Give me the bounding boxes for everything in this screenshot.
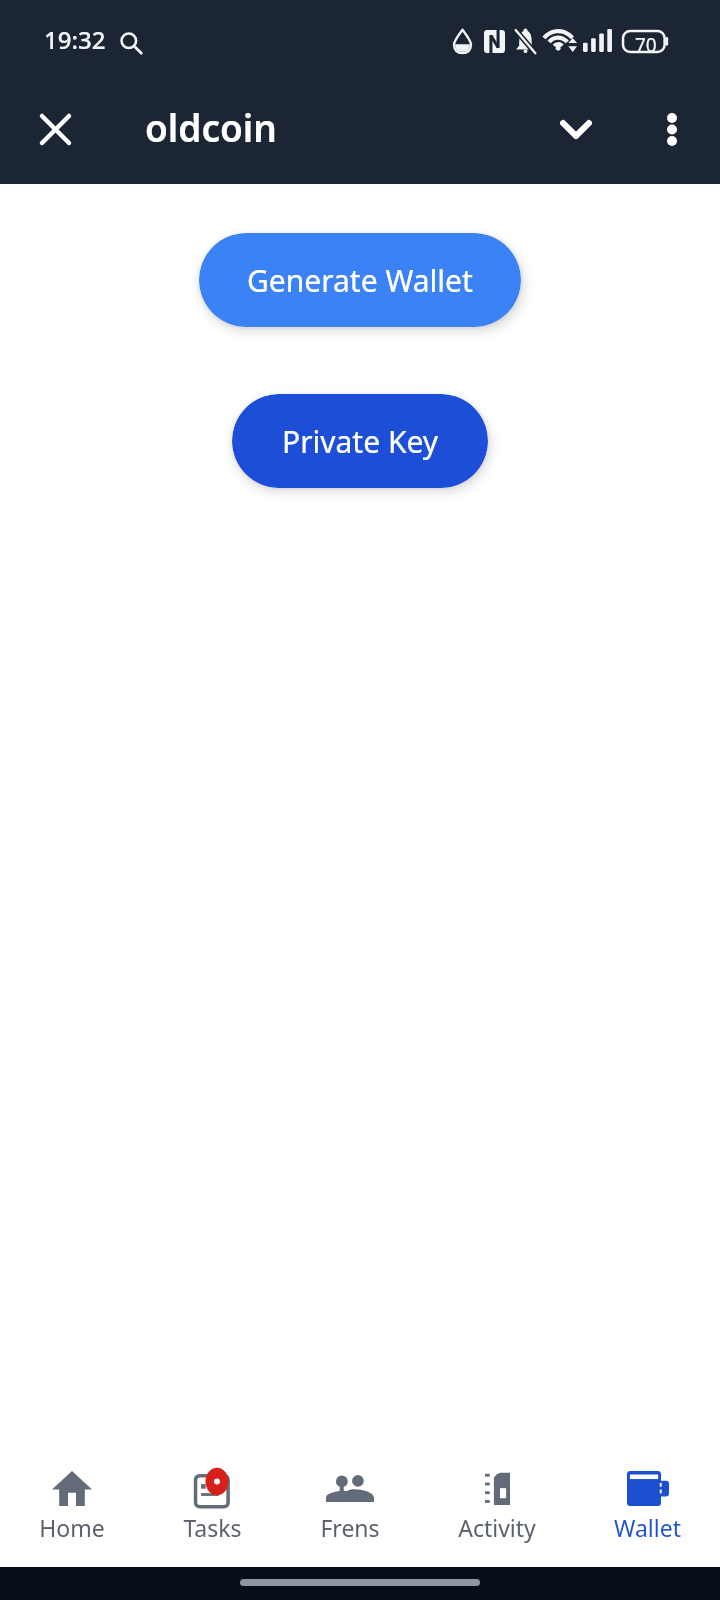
button[interactable]: Expand — [527, 80, 625, 178]
staticText: Tasks — [183, 1512, 242, 1543]
button[interactable]: Close — [6, 80, 104, 178]
button[interactable]: Frens — [281, 1430, 418, 1567]
button[interactable]: Wallet — [575, 1430, 720, 1567]
staticText: Frens — [320, 1512, 380, 1543]
button[interactable]: More options — [623, 80, 720, 178]
button[interactable]: Generate Wallet — [199, 233, 521, 327]
staticText: oldcoin — [145, 102, 277, 152]
staticText: Generate Wallet — [247, 260, 473, 301]
button[interactable]: Private Key — [232, 394, 488, 488]
staticText: Private Key — [282, 421, 439, 462]
staticText: 19:32 — [44, 23, 106, 56]
staticText: Wallet — [614, 1512, 681, 1543]
staticText: Activity — [458, 1512, 536, 1543]
staticText: 70 — [635, 32, 657, 53]
button[interactable]: Tasks — [143, 1430, 281, 1567]
staticText: Home — [39, 1512, 105, 1543]
button[interactable]: Activity — [418, 1430, 575, 1567]
button[interactable]: Home — [0, 1430, 143, 1567]
